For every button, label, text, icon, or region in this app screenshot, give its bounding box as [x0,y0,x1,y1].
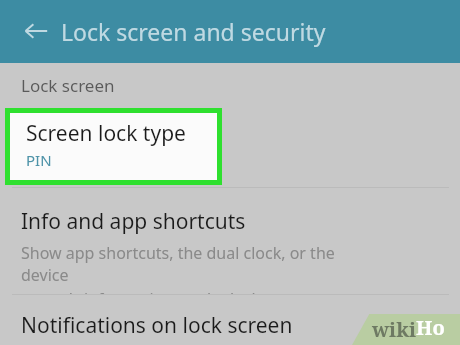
button[interactable]: Notifications on lock screen [0,295,460,345]
staticText: Lock screen and security [61,16,326,47]
button[interactable]: Info and app shortcuts [0,188,460,294]
staticText: PIN [26,150,52,170]
button[interactable]: Back [18,13,54,49]
staticText: Lock screen [21,74,115,97]
staticText: Notifications on lock screen [21,311,293,340]
staticText: Info and app shortcuts [21,207,246,236]
staticText: How [416,314,460,345]
staticText: Show app shortcuts, the dual clock, or t… [21,242,382,286]
staticText: owner's information on the lock screen. [21,288,319,294]
staticText: Screen lock type [26,119,186,148]
staticText: wiki [372,316,416,343]
button[interactable]: Screen lock type [10,113,217,180]
